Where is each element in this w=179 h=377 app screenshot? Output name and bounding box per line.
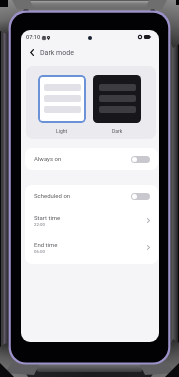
- button[interactable]: Always on: [25, 148, 158, 170]
- staticText: Scheduled on: [34, 192, 71, 199]
- staticText: Dark: [112, 128, 123, 134]
- staticText: Dark mode: [40, 49, 74, 57]
- button[interactable]: Dark: [93, 75, 141, 134]
- staticText: End time: [34, 241, 58, 248]
- button[interactable]: Light: [38, 75, 86, 134]
- staticText: Start time: [34, 214, 61, 221]
- button[interactable]: Scheduled on: [25, 185, 158, 207]
- button[interactable]: Back: [25, 46, 38, 59]
- staticText: 06:00: [34, 249, 45, 254]
- staticText: Always on: [34, 155, 62, 162]
- staticText: 07:10: [26, 34, 41, 41]
- staticText: Light: [56, 128, 68, 134]
- staticText: 22:00: [34, 222, 45, 227]
- button[interactable]: End time: [25, 234, 158, 261]
- button[interactable]: Start time: [25, 207, 158, 234]
